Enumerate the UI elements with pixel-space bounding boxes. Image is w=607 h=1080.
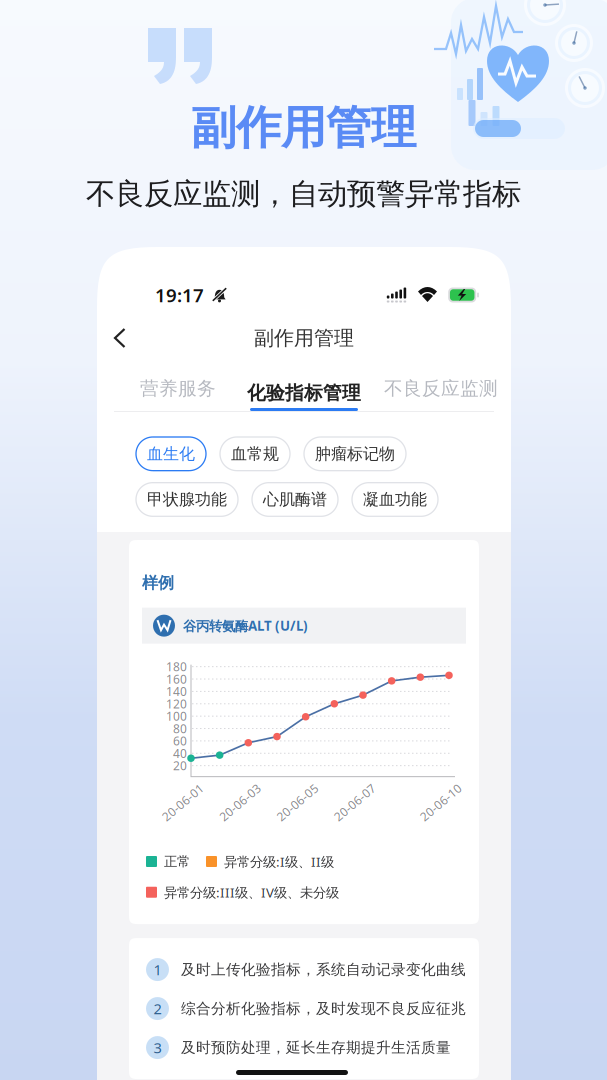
button[interactable]: 肿瘤标记物 [304,437,406,471]
staticText: 副作用管理 [191,100,416,156]
staticText: 综合分析化验指标，及时发现不良反应征兆 [181,1000,466,1018]
button[interactable]: 不良反应监测 [371,368,511,408]
staticText: 及时上传化验指标，系统自动记录变化曲线 [181,961,466,979]
button[interactable]: 心肌酶谱 [252,483,338,516]
button[interactable]: 血生化 [136,437,206,471]
staticText: 及时预防处理，延长生存期提升生活质量 [181,1039,451,1057]
staticText: 60 [173,733,187,749]
button[interactable]: 甲状腺功能 [136,483,238,516]
button[interactable]: 返回 [97,316,143,360]
staticText: 异常分级:I级、II级 [224,853,334,870]
staticText: 不良反应监测 [384,377,498,400]
staticText: 营养服务 [140,377,216,400]
button[interactable]: 凝血功能 [352,483,438,516]
button[interactable]: 营养服务 [119,368,237,408]
staticText: 140 [166,683,187,699]
staticText: 样例 [142,573,174,593]
staticText: 40 [173,745,187,761]
staticText: 19:17 [155,283,204,307]
staticText: 20 [173,758,187,774]
staticText: 血常规 [231,444,279,464]
staticText: 1 [153,960,161,979]
staticText: 20-06-07 [320,780,370,796]
staticText: 肿瘤标记物 [315,444,395,464]
staticText: 甲状腺功能 [147,490,227,509]
staticText: 谷丙转氨酶ALT (U/L) [183,617,308,634]
staticText: 120 [166,696,187,712]
staticText: 160 [166,671,187,687]
staticText: 20-06-05 [263,780,313,796]
staticText: 化验指标管理 [247,381,361,404]
staticText: 3 [153,1038,161,1057]
button[interactable]: 血常规 [220,437,290,471]
staticText: 20-06-10 [406,780,456,796]
button[interactable]: 化验指标管理 [237,366,371,411]
staticText: 正常 [164,853,190,870]
staticText: 血生化 [147,444,195,464]
staticText: 异常分级:III级、IV级、未分级 [164,883,339,901]
staticText: 80 [173,721,187,736]
staticText: 180 [166,659,187,675]
staticText: 凝血功能 [363,490,427,509]
staticText: 2 [153,999,161,1018]
staticText: 100 [166,708,187,724]
staticText: 不良反应监测，自动预警异常指标 [86,176,521,212]
staticText: 20-06-01 [148,780,198,796]
staticText: 副作用管理 [254,326,354,350]
staticText: 20-06-03 [205,780,255,796]
staticText: 心肌酶谱 [263,490,327,509]
